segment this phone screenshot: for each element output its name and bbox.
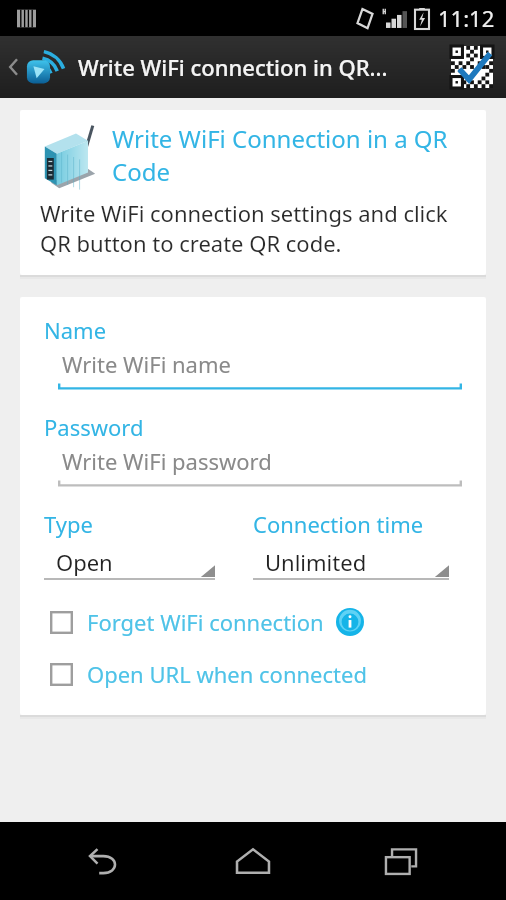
button[interactable]: Navigate up bbox=[4, 46, 70, 88]
staticText: Name bbox=[44, 315, 107, 345]
staticText: Write WiFi connection in QR... bbox=[78, 52, 442, 82]
staticText: 11:12 bbox=[438, 3, 495, 33]
button[interactable]: Create QR code bbox=[446, 41, 498, 93]
other: Information bbox=[336, 608, 364, 636]
button[interactable]: Back bbox=[64, 822, 148, 900]
staticText: Write WiFi name bbox=[62, 349, 231, 379]
staticText: Write WiFi connection settings and click… bbox=[40, 198, 468, 259]
staticText: Open URL when connected bbox=[87, 659, 367, 689]
button[interactable]: Open bbox=[44, 547, 215, 581]
staticText: Unlimited bbox=[265, 547, 367, 577]
button[interactable]: Forget WiFi connection bbox=[50, 601, 462, 643]
staticText: Forget WiFi connection bbox=[87, 607, 324, 637]
staticText: Write WiFi password bbox=[62, 446, 272, 476]
button[interactable]: Open URL when connected bbox=[50, 653, 462, 695]
staticText: Type bbox=[44, 509, 93, 539]
button[interactable]: Write WiFi name bbox=[58, 349, 462, 392]
staticText: Connection time bbox=[253, 509, 424, 539]
staticText: Write WiFi Connection in a QR Code bbox=[112, 122, 468, 188]
button[interactable]: Write WiFi password bbox=[58, 446, 462, 489]
button[interactable]: Recent apps bbox=[359, 822, 443, 900]
button[interactable]: Home bbox=[211, 822, 295, 900]
staticText: Password bbox=[44, 412, 144, 442]
staticText: Open bbox=[56, 547, 113, 577]
button[interactable]: Unlimited bbox=[253, 547, 449, 581]
